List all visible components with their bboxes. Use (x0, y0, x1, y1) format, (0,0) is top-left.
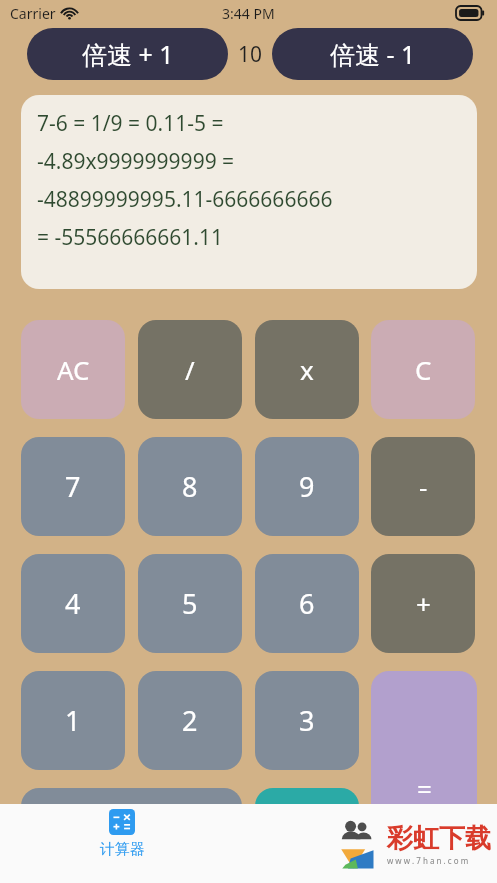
staticText: C (415, 352, 432, 387)
staticText: 3:44 PM (222, 4, 275, 23)
button[interactable]: 倍速 - 1 (272, 28, 473, 80)
staticText: 4 (65, 585, 81, 622)
button[interactable]: 9 (255, 437, 359, 536)
button[interactable]: 计算器 (82, 809, 162, 859)
button[interactable]: 4 (21, 554, 125, 653)
button[interactable]: 7 (21, 437, 125, 536)
staticText: x (300, 352, 314, 387)
button[interactable]: 倍速 + 1 (27, 28, 228, 80)
staticText: 计算器 (100, 840, 145, 859)
staticText: AC (57, 352, 90, 387)
staticText: = -55566666661.11 (37, 223, 224, 252)
staticText: 彩虹下载 (387, 822, 491, 855)
staticText: 倍速 - 1 (330, 37, 416, 71)
button[interactable]: 3 (255, 671, 359, 770)
button[interactable]: 8 (138, 437, 242, 536)
button[interactable]: + (371, 554, 475, 653)
button[interactable]: 6 (255, 554, 359, 653)
staticText: 8 (182, 468, 198, 505)
staticText: -4.89x9999999999 = (37, 147, 235, 176)
button[interactable]: x (255, 320, 359, 419)
button[interactable]: 2 (138, 671, 242, 770)
staticText: 1 (65, 702, 81, 739)
staticText: 10 (238, 40, 263, 69)
staticText: 6 (299, 585, 315, 622)
staticText: 2 (182, 702, 198, 739)
staticText: = (417, 771, 432, 806)
button[interactable]: 1 (21, 671, 125, 770)
staticText: 9 (299, 468, 315, 505)
staticText: w w w . 7 h a n . c o m (387, 855, 469, 866)
other: 计算器 (109, 809, 135, 835)
staticText: / (185, 352, 195, 387)
staticText: 5 (182, 585, 198, 622)
staticText: 倍速 + 1 (82, 37, 174, 71)
button[interactable]: 5 (138, 554, 242, 653)
button[interactable] (21, 788, 242, 883)
staticText: + (416, 586, 431, 621)
staticText: - (419, 469, 428, 504)
button[interactable]: = (371, 671, 477, 883)
button[interactable]: AC (21, 320, 125, 419)
staticText: 7 (65, 468, 81, 505)
button[interactable]: C (371, 320, 475, 419)
staticText: -48899999995.11-6666666666 (37, 185, 333, 214)
staticText: 7-6 = 1/9 = 0.11-5 = (37, 109, 224, 138)
staticText: Carrier (10, 4, 56, 23)
button[interactable]: - (371, 437, 475, 536)
button[interactable]: / (138, 320, 242, 419)
button[interactable] (255, 788, 359, 883)
staticText: 3 (299, 702, 315, 739)
